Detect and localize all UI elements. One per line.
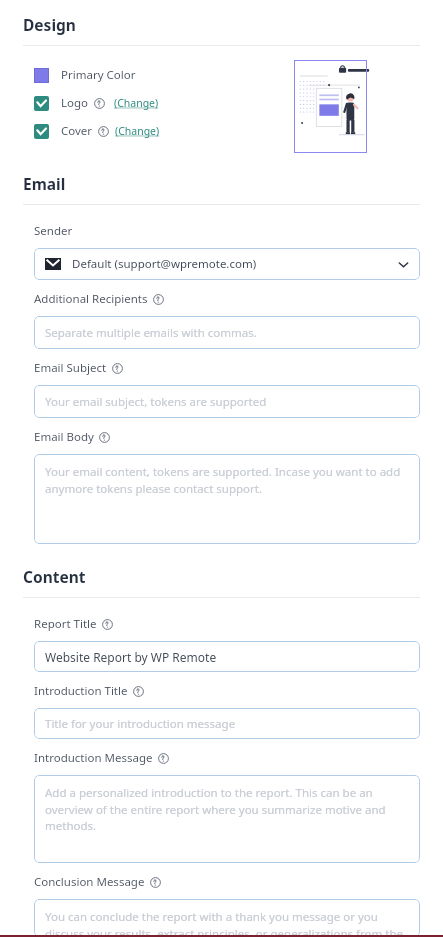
staticText: Email Body (34, 429, 94, 445)
staticText: Title for your introduction message (45, 716, 236, 732)
staticText: Your email subject, tokens are supported (45, 394, 267, 410)
staticText: Cover (61, 123, 93, 139)
staticText: Report Title (34, 616, 97, 632)
staticText: Your email content, tokens are supported… (45, 464, 406, 496)
button[interactable]: Logo enabled (34, 96, 49, 111)
staticText: Separate multiple emails with commas. (45, 325, 257, 341)
staticText: Email (23, 173, 66, 194)
staticText: Introduction Title (34, 683, 128, 699)
button[interactable]: Add a personalized introduction to the r… (34, 775, 420, 863)
button[interactable]: Your email subject, tokens are supported (34, 385, 420, 418)
staticText: You can conclude the report with a thank… (45, 909, 406, 937)
staticText: Website Report by WP Remote (45, 649, 217, 665)
staticText: Conclusion Message (34, 874, 145, 890)
staticText: Sender (34, 223, 73, 239)
button[interactable]: Website Report by WP Remote (34, 641, 420, 672)
staticText: (Change) (114, 96, 159, 110)
button[interactable]: Default (support@wpremote.com) (34, 248, 420, 280)
staticText: Default (support@wpremote.com) (72, 256, 257, 272)
button[interactable]: Your email content, tokens are supported… (34, 454, 420, 544)
staticText: Additional Recipients (34, 291, 148, 307)
button[interactable]: Cover enabled (34, 124, 49, 139)
button[interactable]: Separate multiple emails with commas. (34, 316, 420, 349)
staticText: Add a personalized introduction to the r… (45, 785, 406, 833)
button[interactable]: Primary Color (34, 67, 136, 83)
staticText: Introduction Message (34, 750, 153, 766)
button[interactable]: Title for your introduction message (34, 708, 420, 739)
staticText: Email Subject (34, 360, 107, 376)
button[interactable]: (Change) (114, 96, 159, 110)
button[interactable]: (Change) (115, 124, 160, 138)
staticText: Primary Color (61, 67, 136, 83)
staticText: Design (23, 14, 76, 35)
staticText: Logo (61, 95, 89, 111)
staticText: Content (23, 566, 86, 587)
button[interactable]: You can conclude the report with a thank… (34, 899, 420, 937)
button[interactable]: Cover preview (294, 60, 367, 153)
staticText: (Change) (115, 124, 160, 138)
